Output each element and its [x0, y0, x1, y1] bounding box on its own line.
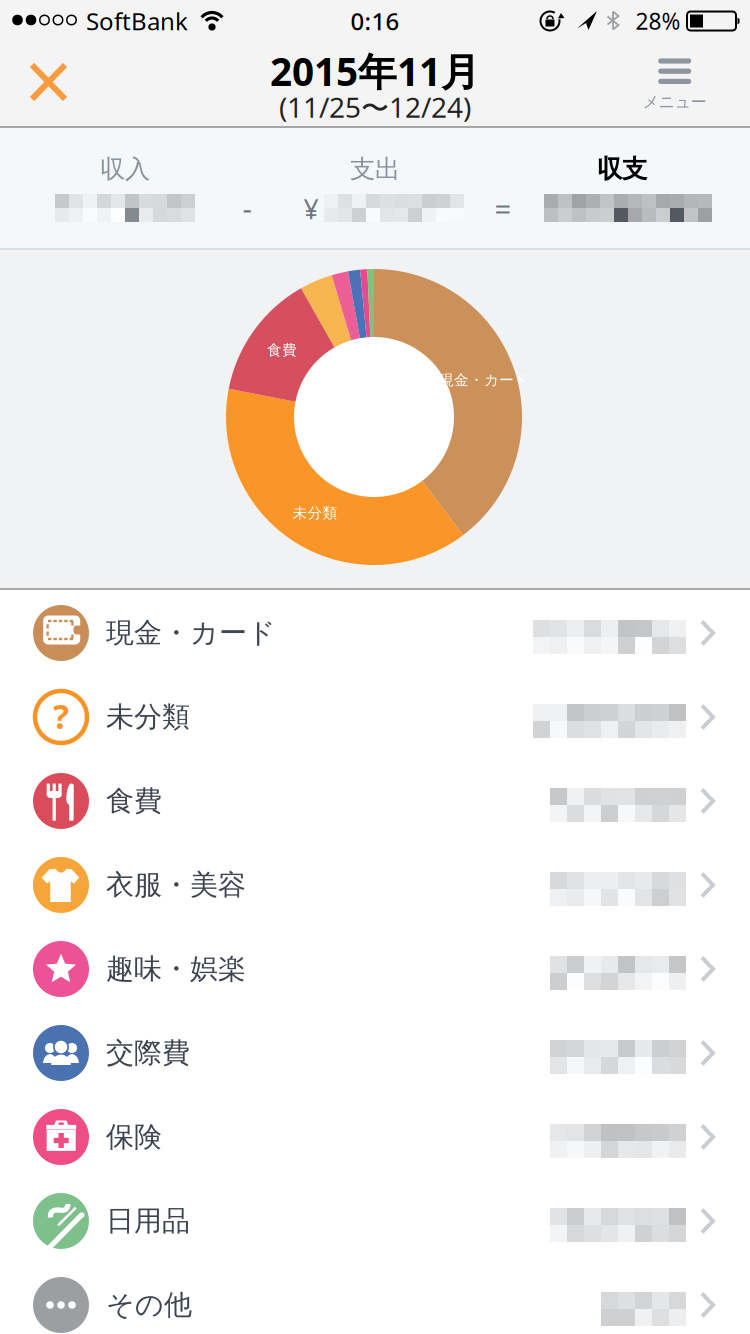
button[interactable]: Close: [28, 61, 69, 103]
button[interactable]: 保険: [0, 1095, 750, 1179]
staticText: 日用品: [106, 1204, 190, 1238]
staticText: 現金・カード: [439, 371, 529, 389]
staticText: 未分類: [106, 700, 190, 734]
staticText: (11/25〜12/24): [279, 88, 471, 126]
button[interactable]: 衣服・美容: [0, 843, 750, 927]
staticText: 食費: [106, 784, 162, 818]
staticText: 交際費: [106, 1036, 190, 1070]
button[interactable]: 趣味・娯楽: [0, 927, 750, 1011]
staticText: 収入: [100, 153, 150, 184]
staticText: メニュー: [643, 92, 707, 112]
staticText: =: [494, 188, 511, 227]
staticText: ¥: [303, 191, 318, 227]
button[interactable]: 日用品: [0, 1179, 750, 1263]
staticText: 収支: [597, 153, 647, 184]
button[interactable]: ?: [0, 675, 750, 759]
staticText: 28%: [635, 6, 680, 36]
button[interactable]: 食費: [0, 759, 750, 843]
staticText: -: [242, 188, 251, 227]
staticText: 未分類: [292, 504, 337, 522]
button[interactable]: 現金・カード: [0, 591, 750, 675]
staticText: 0:16: [350, 5, 399, 37]
staticText: その他: [106, 1288, 192, 1322]
staticText: ?: [53, 694, 69, 738]
button[interactable]: その他: [0, 1263, 750, 1334]
staticText: 衣服・美容: [106, 868, 246, 902]
staticText: SoftBank: [86, 5, 188, 37]
button[interactable]: Menu: [643, 58, 707, 112]
staticText: 食費: [267, 341, 297, 359]
staticText: 支出: [350, 153, 400, 184]
button[interactable]: 交際費: [0, 1011, 750, 1095]
staticText: 保険: [106, 1120, 162, 1154]
staticText: 2015年11月: [270, 45, 480, 97]
staticText: 趣味・娯楽: [106, 952, 246, 986]
staticText: 現金・カード: [106, 616, 276, 650]
